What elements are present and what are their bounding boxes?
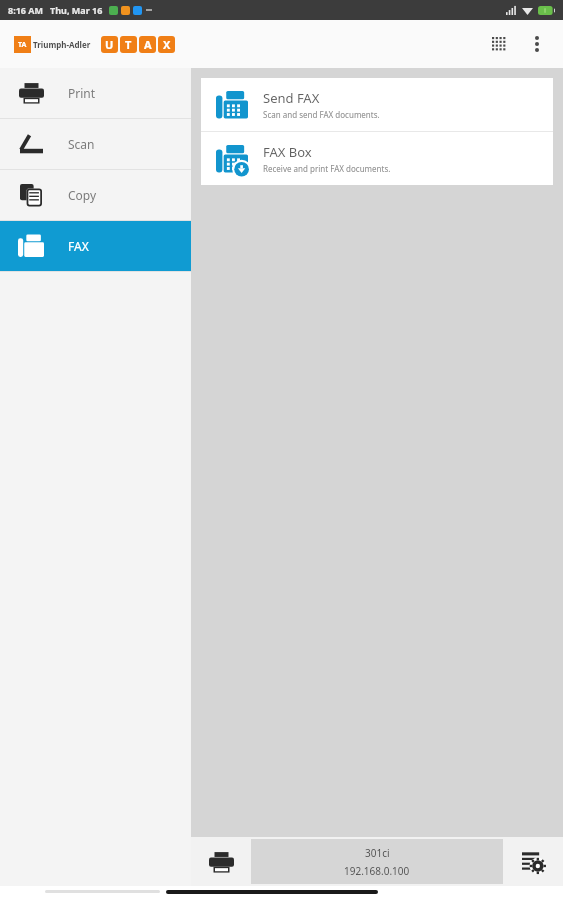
button[interactable]: Scan bbox=[0, 119, 191, 169]
button[interactable]: FAX Box bbox=[201, 132, 553, 185]
button[interactable]: More options bbox=[519, 26, 555, 62]
staticText: Copy bbox=[68, 187, 97, 203]
staticText: T bbox=[125, 37, 132, 52]
staticText: 192.168.0.100 bbox=[344, 864, 410, 878]
button[interactable]: Send FAX bbox=[201, 78, 553, 131]
staticText: FAX Box bbox=[263, 143, 312, 161]
staticText: A bbox=[144, 37, 152, 52]
staticText: Receive and print FAX documents. bbox=[263, 163, 391, 174]
staticText: Print bbox=[68, 85, 96, 101]
staticText: Triumph-Adler bbox=[33, 39, 91, 50]
button[interactable]: Apps bbox=[479, 24, 519, 64]
button[interactable]: FAX bbox=[0, 221, 191, 271]
staticText: FAX bbox=[68, 238, 89, 254]
button[interactable]: Copy bbox=[0, 170, 191, 220]
staticText: U bbox=[105, 37, 114, 52]
staticText: Scan and send FAX documents. bbox=[263, 109, 380, 120]
staticText: Thu, Mar 16 bbox=[50, 4, 103, 16]
button[interactable]: Device settings bbox=[513, 842, 553, 882]
staticText: 8:16 AM bbox=[8, 4, 44, 16]
staticText: X bbox=[163, 37, 171, 52]
button[interactable]: 301ci bbox=[251, 839, 503, 884]
staticText: 301ci bbox=[365, 846, 390, 860]
staticText: TA bbox=[18, 40, 27, 50]
staticText: Send FAX bbox=[263, 89, 320, 107]
staticText: Scan bbox=[68, 136, 95, 152]
button[interactable]: Print bbox=[0, 68, 191, 118]
button[interactable]: Printer bbox=[201, 842, 241, 882]
